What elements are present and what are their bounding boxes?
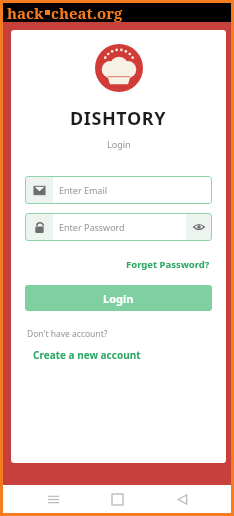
button[interactable]: Enter Email [25,176,212,204]
staticText: hack [7,3,44,22]
button[interactable]: Show password [186,213,212,241]
staticText: Login [103,291,134,306]
staticText: Enter Password [59,221,125,233]
staticText: Enter Email [59,184,108,196]
staticText: Don't have account? [27,328,108,340]
staticText: DISHTORY [70,106,167,131]
button[interactable]: Home [102,485,132,513]
button[interactable]: Enter Password [25,213,212,241]
button[interactable]: Login [25,285,212,311]
staticText: Create a new account [33,348,141,362]
button[interactable]: Back [167,485,197,513]
button[interactable]: Recent apps [38,485,68,513]
staticText: Login [107,138,131,150]
staticText: cheat.org [51,3,123,22]
button[interactable]: Create a new account [33,348,141,362]
button[interactable]: Forget Password? [124,256,212,273]
staticText: Forget Password? [126,258,210,271]
